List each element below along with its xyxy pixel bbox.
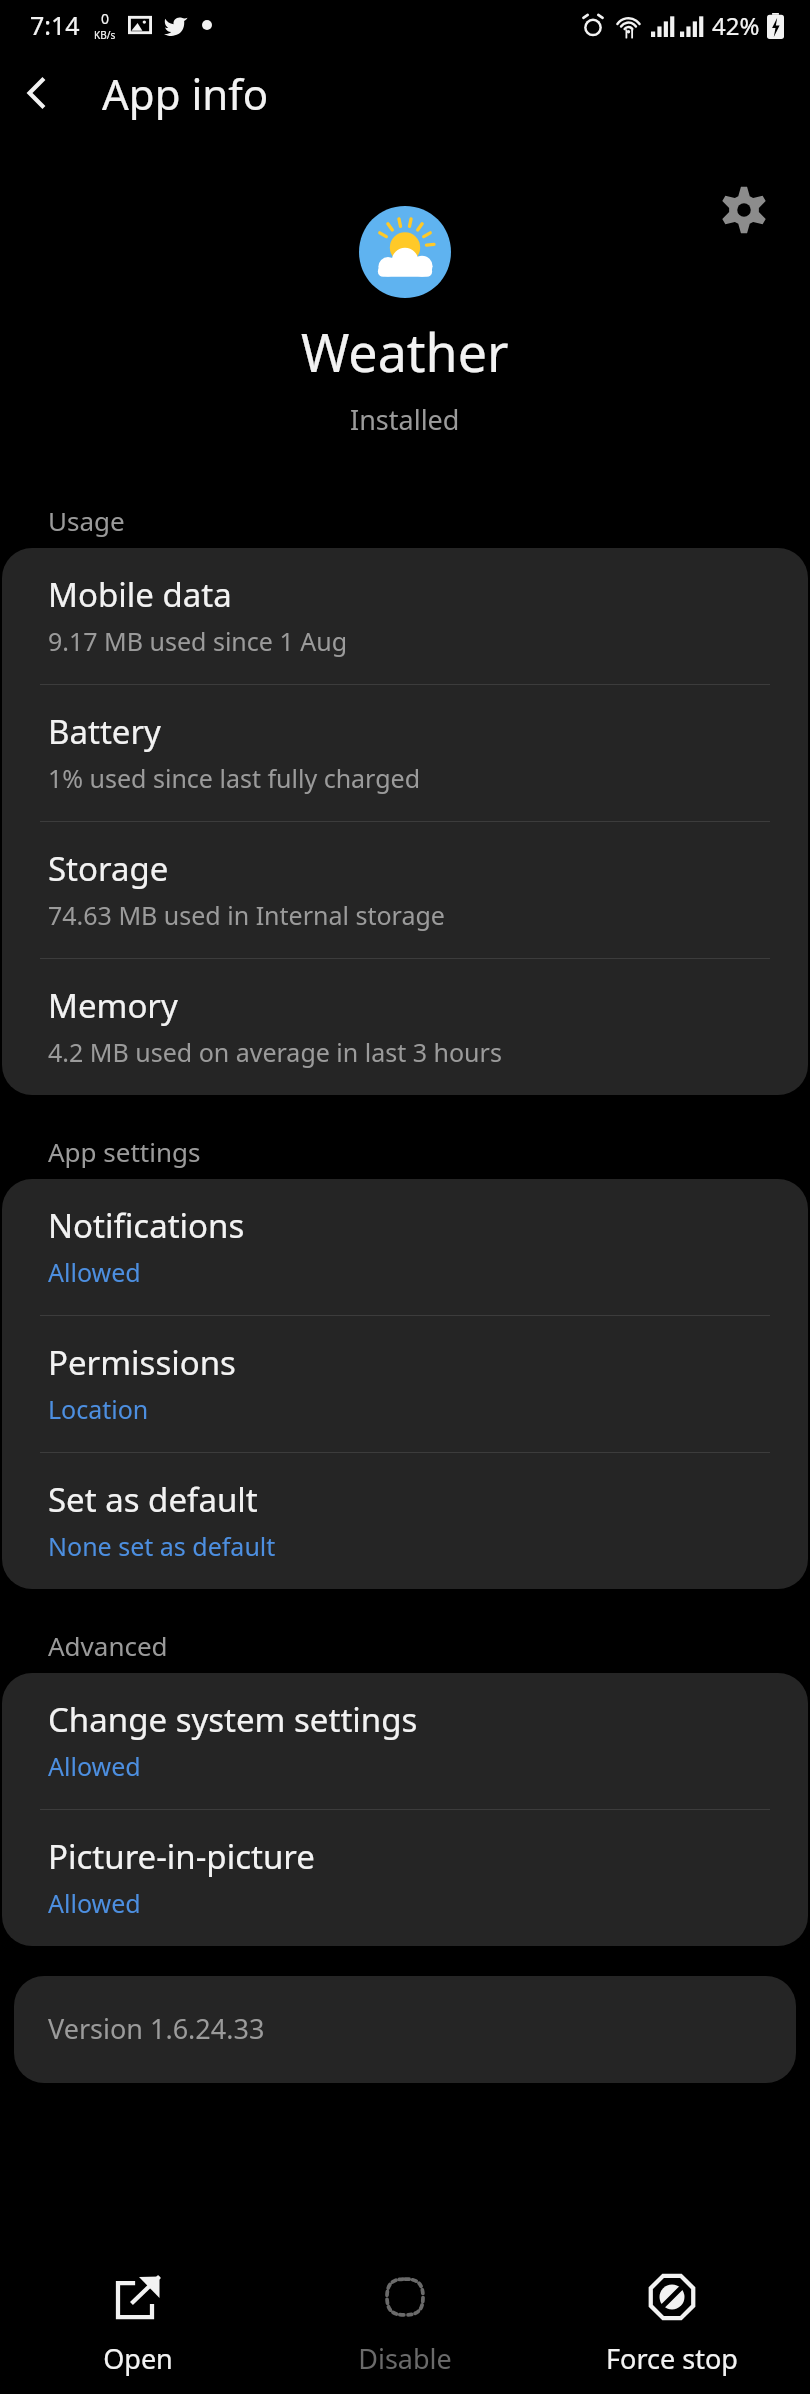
button[interactable]: Set as default xyxy=(2,1453,808,1589)
staticText: App settings xyxy=(48,1134,201,1169)
button[interactable]: Back xyxy=(0,56,74,130)
staticText: 7:14 xyxy=(30,8,80,42)
button[interactable]: Picture-in-picture xyxy=(2,1810,808,1946)
staticText: Allowed xyxy=(48,1255,141,1289)
staticText: Mobile data xyxy=(48,572,232,617)
staticText: 42% xyxy=(712,9,760,42)
staticText: Usage xyxy=(48,503,125,538)
staticText: Disable xyxy=(358,2340,452,2377)
staticText: None set as default xyxy=(48,1529,276,1563)
staticText: 74.63 MB used in Internal storage xyxy=(48,898,445,932)
staticText: 9.17 MB used since 1 Aug xyxy=(48,624,348,658)
staticText: Battery xyxy=(48,709,161,754)
staticText: Memory xyxy=(48,983,178,1028)
button[interactable]: Open xyxy=(9,2262,267,2387)
staticText: Version 1.6.24.33 xyxy=(48,2010,265,2047)
staticText: KB/s xyxy=(94,28,116,42)
button[interactable]: Mobile data xyxy=(2,548,808,684)
staticText: Location xyxy=(48,1392,149,1426)
staticText: Notifications xyxy=(48,1203,245,1248)
staticText: Picture-in-picture xyxy=(48,1834,315,1879)
button[interactable]: Change system settings xyxy=(2,1673,808,1809)
button[interactable]: App settings xyxy=(700,166,788,254)
staticText: Allowed xyxy=(48,1886,141,1920)
staticText: Advanced xyxy=(48,1628,168,1663)
staticText: Force stop xyxy=(606,2340,738,2377)
staticText: Installed xyxy=(350,401,460,438)
staticText: Permissions xyxy=(48,1340,236,1385)
button[interactable]: Battery xyxy=(2,685,808,821)
staticText: Weather xyxy=(301,316,509,387)
button[interactable]: Version 1.6.24.33 xyxy=(14,1976,796,2083)
staticText: 0 xyxy=(101,9,110,28)
button[interactable]: Memory xyxy=(2,959,808,1095)
staticText: Allowed xyxy=(48,1749,141,1783)
staticText: 1% used since last fully charged xyxy=(48,761,421,795)
staticText: App info xyxy=(102,65,269,122)
button[interactable]: Permissions xyxy=(2,1316,808,1452)
staticText: Set as default xyxy=(48,1477,258,1522)
button[interactable]: Notifications xyxy=(2,1179,808,1315)
staticText: Storage xyxy=(48,846,169,891)
button[interactable]: Disable xyxy=(276,2262,534,2387)
staticText: 4.2 MB used on average in last 3 hours xyxy=(48,1035,502,1069)
button[interactable]: Storage xyxy=(2,822,808,958)
staticText: Open xyxy=(103,2340,173,2377)
button[interactable]: Force stop xyxy=(543,2262,801,2387)
staticText: Change system settings xyxy=(48,1697,418,1742)
